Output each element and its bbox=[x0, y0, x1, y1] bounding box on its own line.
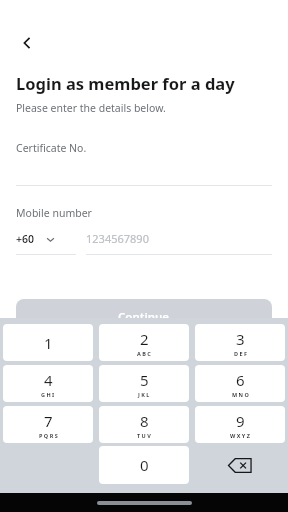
staticText: Continue bbox=[118, 309, 170, 325]
staticText: Mobile number bbox=[16, 206, 92, 220]
staticText: J K L bbox=[138, 391, 150, 398]
button[interactable]: 8 bbox=[99, 406, 189, 443]
staticText: G H I bbox=[41, 391, 55, 398]
button[interactable]: 4 bbox=[3, 365, 93, 402]
staticText: 3 bbox=[236, 329, 245, 349]
button[interactable]: 1 bbox=[3, 324, 93, 361]
staticText: 1234567890 bbox=[86, 231, 149, 246]
staticText: 6 bbox=[236, 370, 245, 390]
staticText: Login as member for a day bbox=[16, 72, 235, 94]
button[interactable]: Delete bbox=[192, 445, 288, 485]
staticText: +60 bbox=[16, 232, 35, 246]
staticText: T U V bbox=[137, 432, 151, 439]
button[interactable]: 7 bbox=[3, 406, 93, 443]
staticText: 7 bbox=[44, 411, 53, 431]
button[interactable]: +60 bbox=[16, 232, 76, 255]
staticText: M N O bbox=[232, 391, 249, 398]
staticText: 1 bbox=[44, 333, 53, 353]
staticText: 2 bbox=[140, 329, 149, 349]
button[interactable]: 1234567890 bbox=[86, 231, 272, 255]
staticText: W X Y Z bbox=[230, 432, 250, 439]
staticText: A B C bbox=[137, 350, 151, 357]
staticText: P Q R S bbox=[39, 432, 58, 439]
button[interactable]: 6 bbox=[195, 365, 285, 402]
staticText: 9 bbox=[236, 411, 245, 431]
staticText: 5 bbox=[140, 370, 149, 390]
button[interactable]: Back bbox=[10, 26, 44, 60]
button[interactable]: 9 bbox=[195, 406, 285, 443]
staticText: Please enter the details below. bbox=[16, 101, 166, 115]
button[interactable]: 3 bbox=[195, 324, 285, 361]
staticText: 0 bbox=[140, 455, 149, 475]
staticText: 8 bbox=[140, 411, 149, 431]
staticText: Certificate No. bbox=[16, 141, 87, 155]
staticText: 4 bbox=[44, 370, 53, 390]
button[interactable]: Continue bbox=[16, 299, 272, 334]
button[interactable]: 0 bbox=[99, 446, 189, 484]
button[interactable]: 2 bbox=[99, 324, 189, 361]
staticText: D E F bbox=[234, 350, 247, 357]
button[interactable]: 5 bbox=[99, 365, 189, 402]
